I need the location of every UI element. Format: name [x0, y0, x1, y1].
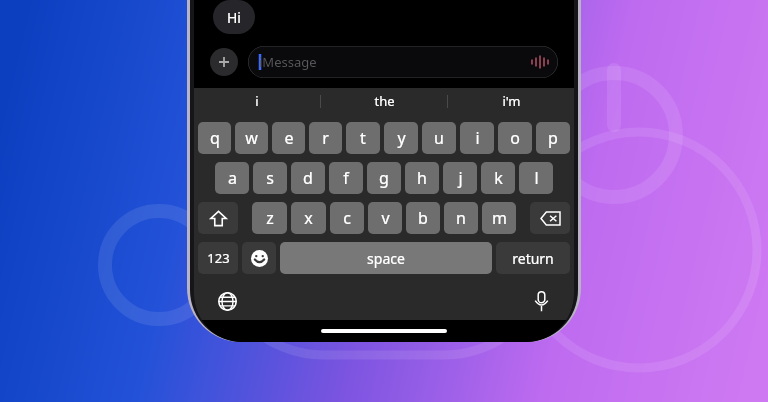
staticText: return: [512, 249, 554, 268]
staticText: o: [510, 127, 520, 149]
button[interactable]: m: [482, 202, 516, 234]
button[interactable]: f: [329, 162, 363, 194]
button[interactable]: i'm: [448, 88, 574, 114]
button[interactable]: Hi: [213, 0, 255, 34]
staticText: m: [492, 207, 507, 229]
button[interactable]: s: [253, 162, 287, 194]
button[interactable]: 123: [198, 242, 238, 274]
staticText: k: [494, 167, 503, 189]
button[interactable]: o: [498, 122, 532, 154]
button[interactable]: iMessage: [248, 46, 558, 78]
button[interactable]: space: [280, 242, 492, 274]
button[interactable]: r: [309, 122, 342, 154]
staticText: w: [245, 127, 258, 149]
staticText: r: [322, 127, 329, 149]
staticText: i'm: [502, 92, 521, 110]
staticText: v: [381, 207, 390, 229]
button[interactable]: c: [330, 202, 364, 234]
button[interactable]: y: [384, 122, 418, 154]
button[interactable]: return: [496, 242, 570, 274]
button[interactable]: b: [406, 202, 440, 234]
staticText: space: [367, 249, 405, 268]
button[interactable]: u: [422, 122, 456, 154]
staticText: the: [374, 92, 395, 110]
staticText: j: [458, 167, 463, 189]
button[interactable]: d: [291, 162, 325, 194]
button[interactable]: i: [194, 88, 320, 114]
staticText: d: [303, 167, 313, 189]
staticText: n: [456, 207, 466, 229]
button[interactable]: n: [444, 202, 478, 234]
staticText: iMessage: [259, 53, 317, 71]
button[interactable]: i: [460, 122, 494, 154]
staticText: l: [534, 167, 539, 189]
staticText: e: [284, 127, 294, 149]
staticText: Hi: [227, 8, 241, 27]
button[interactable]: Add attachment: [210, 48, 238, 76]
staticText: g: [379, 167, 389, 189]
button[interactable]: k: [481, 162, 515, 194]
button[interactable]: Backspace: [530, 202, 570, 234]
staticText: z: [266, 207, 274, 229]
button[interactable]: j: [443, 162, 477, 194]
button[interactable]: p: [536, 122, 570, 154]
staticText: c: [343, 207, 351, 229]
button[interactable]: Shift: [198, 202, 238, 234]
staticText: f: [343, 167, 349, 189]
button[interactable]: g: [367, 162, 401, 194]
button[interactable]: x: [291, 202, 326, 234]
staticText: s: [266, 167, 274, 189]
button[interactable]: Change keyboard language: [212, 286, 242, 316]
staticText: q: [210, 127, 220, 149]
button[interactable]: q: [198, 122, 231, 154]
staticText: i: [255, 92, 259, 110]
staticText: 123: [207, 249, 230, 267]
button[interactable]: e: [272, 122, 305, 154]
button[interactable]: w: [235, 122, 268, 154]
staticText: a: [228, 167, 237, 189]
button[interactable]: t: [346, 122, 380, 154]
button[interactable]: z: [252, 202, 287, 234]
button[interactable]: h: [405, 162, 439, 194]
staticText: b: [418, 207, 428, 229]
staticText: u: [434, 127, 444, 149]
button[interactable]: Emoji: [242, 242, 276, 274]
staticText: i: [475, 127, 480, 149]
staticText: t: [360, 127, 366, 149]
staticText: p: [548, 127, 558, 149]
staticText: y: [397, 127, 406, 149]
button[interactable]: v: [368, 202, 402, 234]
button[interactable]: l: [519, 162, 553, 194]
button[interactable]: a: [215, 162, 249, 194]
button[interactable]: Dictate: [526, 286, 556, 316]
staticText: x: [304, 207, 313, 229]
staticText: h: [417, 167, 427, 189]
button[interactable]: the: [321, 88, 447, 114]
